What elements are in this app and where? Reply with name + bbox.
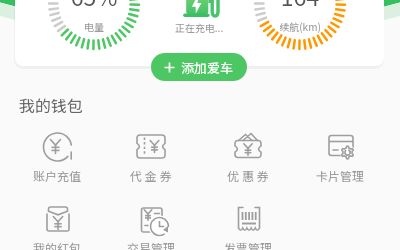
button[interactable]: 卡片管理 <box>293 129 387 185</box>
staticText: 优 惠 券 <box>227 167 269 184</box>
button[interactable]: 账户充值 <box>10 129 104 185</box>
staticText: 账户充值 <box>33 167 82 184</box>
staticText: 发票管理 <box>224 239 273 250</box>
button[interactable]: 交易管理 <box>104 201 198 250</box>
staticText: 交易管理 <box>127 239 176 250</box>
button[interactable]: 添加爱车 <box>151 53 247 81</box>
button[interactable]: 我的红包 <box>10 201 104 250</box>
staticText: 我的钱包 <box>19 93 84 116</box>
staticText: 正在充电... <box>139 20 259 34</box>
staticText: 电量 <box>34 19 154 33</box>
other: 充电状态 <box>180 0 228 18</box>
staticText: 代 金 券 <box>130 167 172 184</box>
staticText: 续航(km) <box>240 19 360 33</box>
staticText: 我的红包 <box>33 239 82 250</box>
staticText: 添加爱车 <box>181 58 234 77</box>
staticText: 65% <box>34 0 154 12</box>
button[interactable]: 发票管理 <box>201 201 295 250</box>
button[interactable]: 优 惠 券 <box>201 129 295 185</box>
staticText: 164 <box>240 0 360 12</box>
staticText: 卡片管理 <box>316 167 365 184</box>
button[interactable]: 代 金 券 <box>104 129 198 185</box>
